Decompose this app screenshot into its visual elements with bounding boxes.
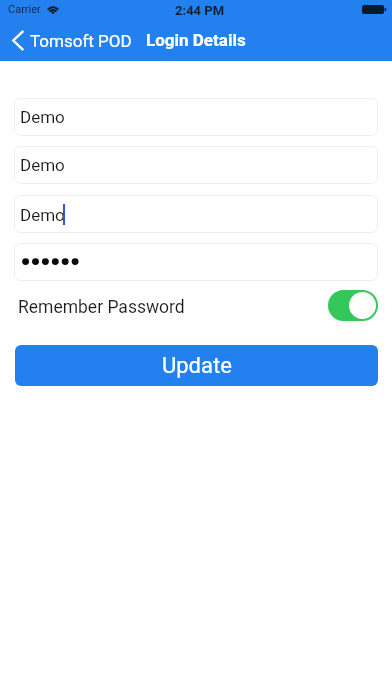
staticText: Demo xyxy=(20,205,65,225)
button[interactable]: Demo xyxy=(14,195,378,233)
button[interactable]: Demo xyxy=(14,98,378,136)
button[interactable]: Remember Password, on xyxy=(328,290,378,321)
staticText: Carrier xyxy=(8,3,41,16)
staticText: Demo xyxy=(20,155,65,175)
staticText: Update xyxy=(162,353,232,379)
staticText: Login Details xyxy=(146,30,246,50)
staticText: Remember Password xyxy=(18,297,185,318)
staticText: Tomsoft POD xyxy=(30,31,132,51)
button[interactable]: Back to Tomsoft POD xyxy=(0,21,142,60)
button[interactable]: Demo xyxy=(14,146,378,184)
button[interactable]: Password xyxy=(14,243,378,281)
staticText: Demo xyxy=(20,107,65,127)
staticText: 2:44 PM xyxy=(175,3,225,18)
button[interactable]: Update xyxy=(15,345,378,386)
